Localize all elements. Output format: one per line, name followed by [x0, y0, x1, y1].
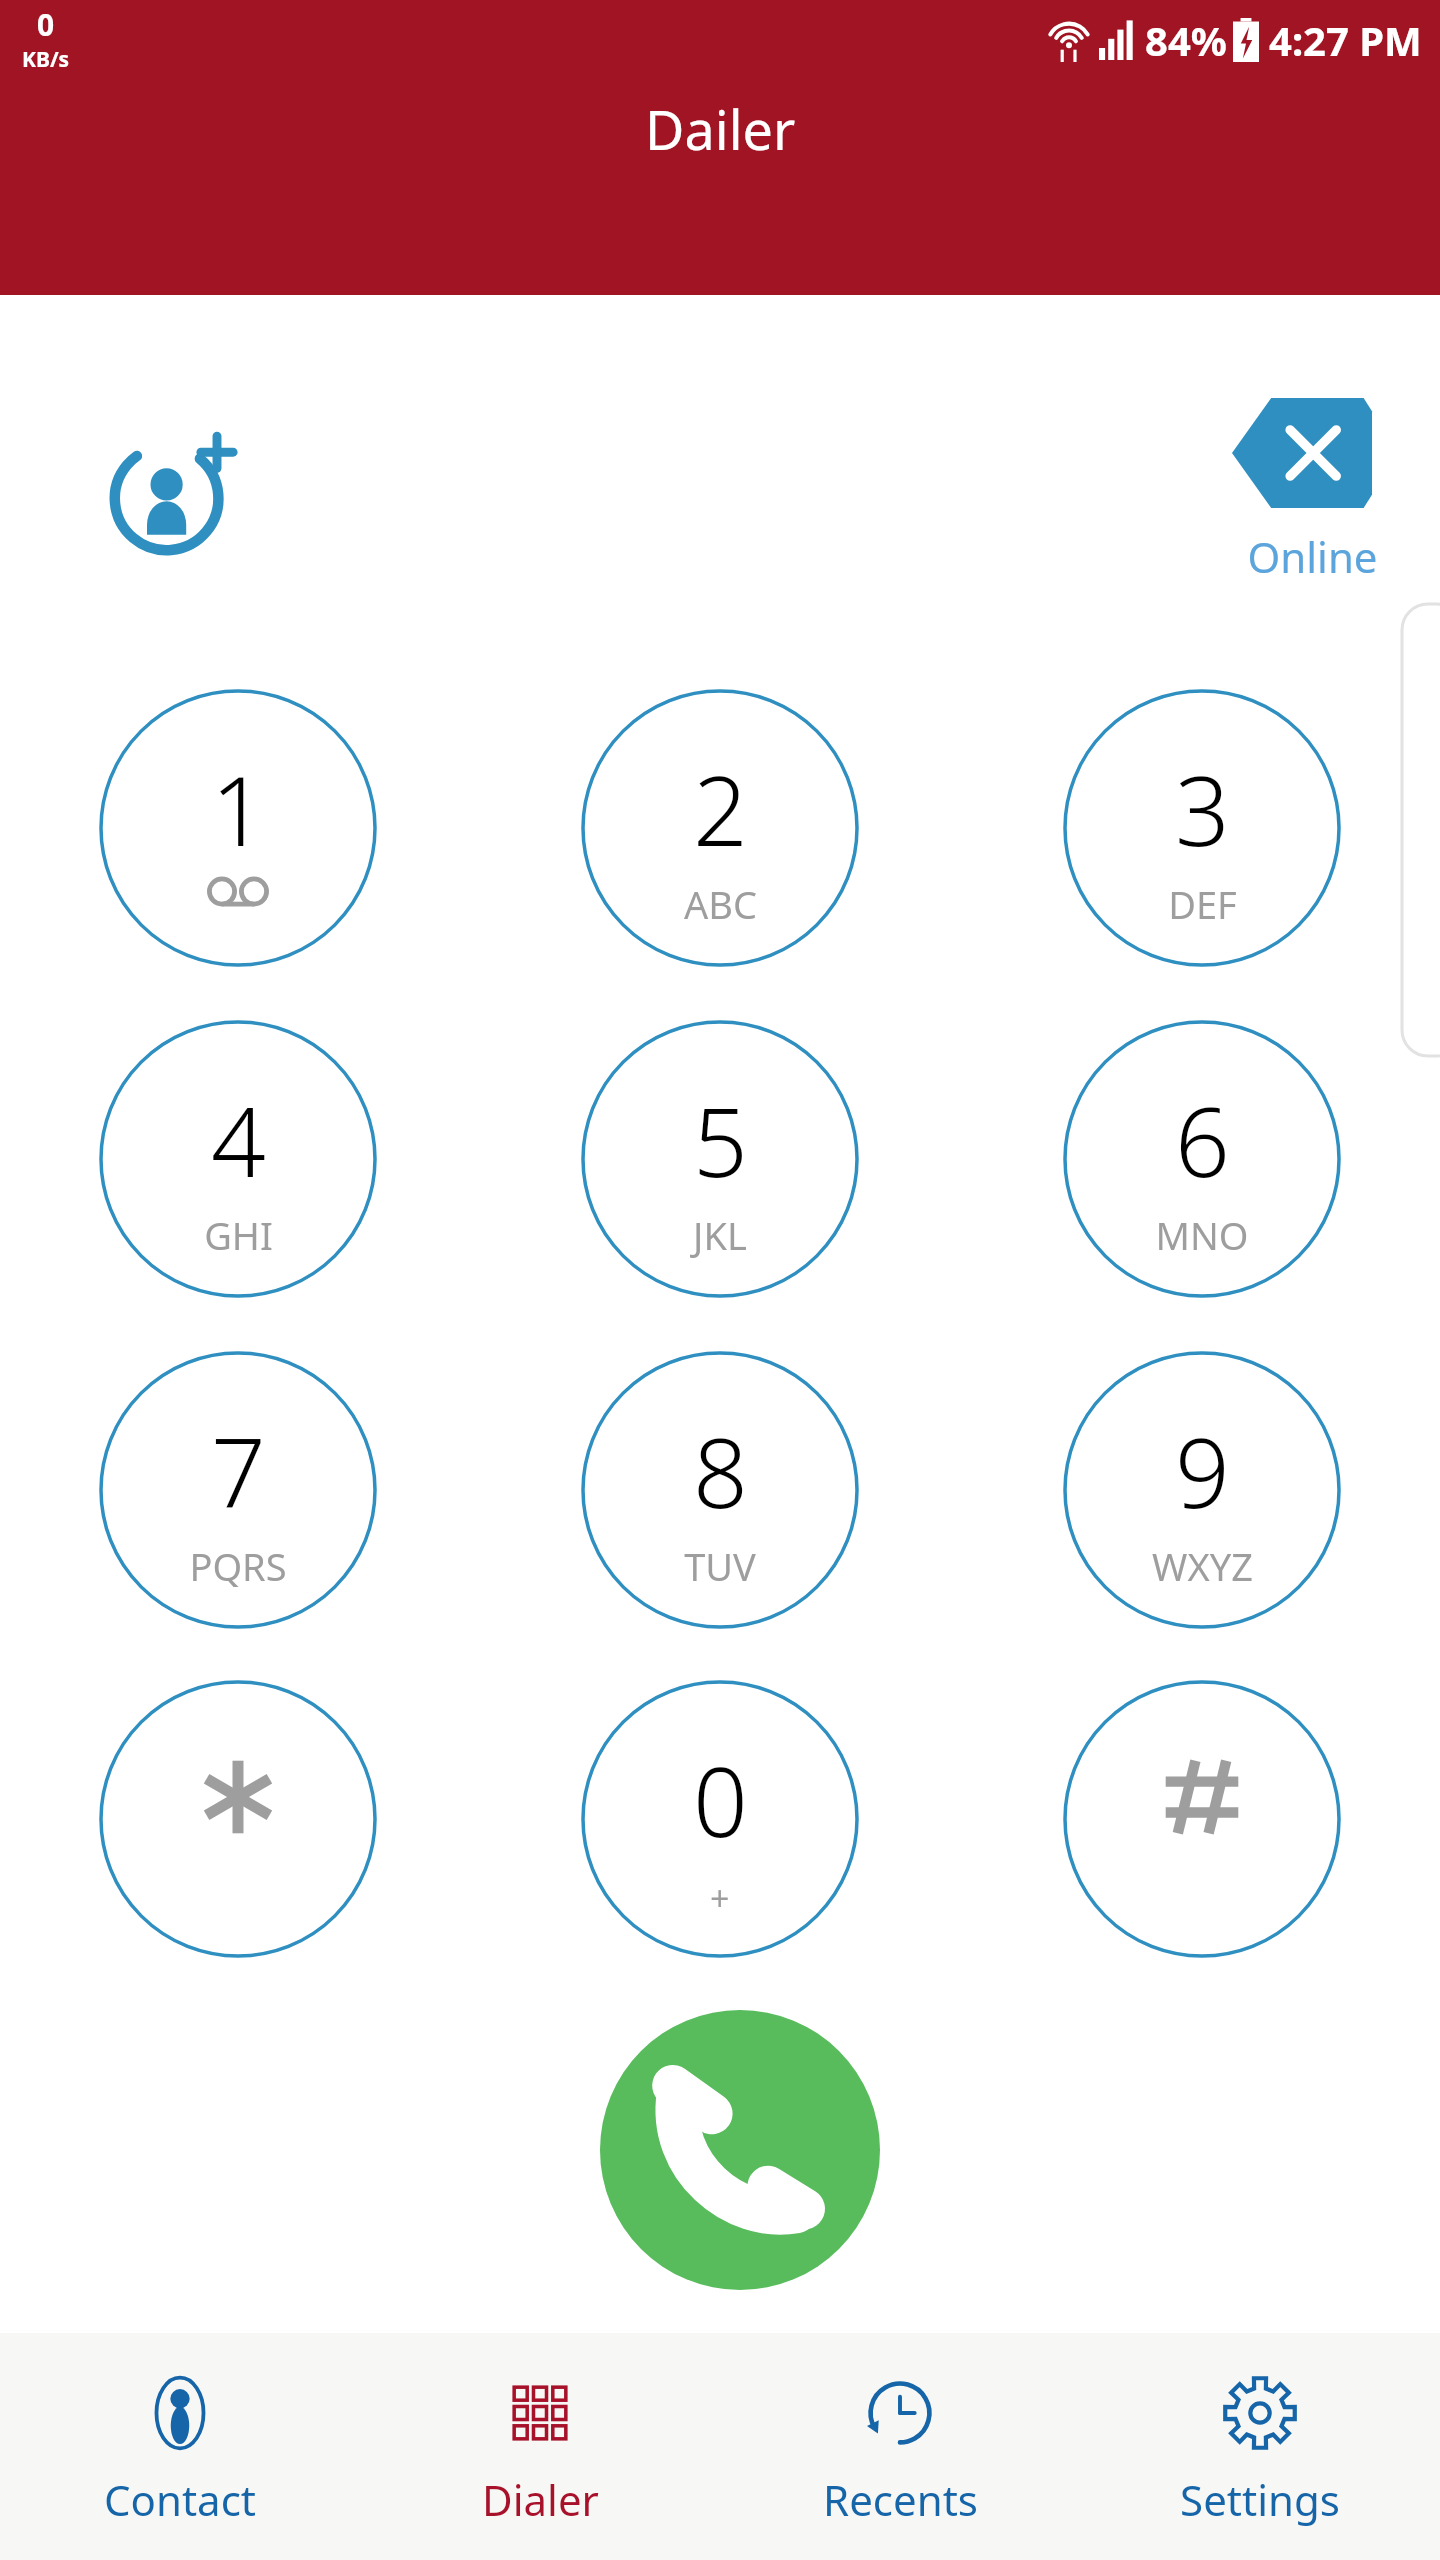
button[interactable]: Backspace [1232, 398, 1372, 508]
button[interactable]: 3 [1063, 689, 1341, 967]
button[interactable]: Add contact [105, 420, 245, 560]
staticText: 4:27 PM [1269, 13, 1422, 67]
staticText: 84% [1145, 13, 1227, 67]
staticText: 3 [1175, 743, 1230, 874]
staticText: Online [1247, 528, 1378, 585]
staticText: KB/s [22, 45, 70, 74]
staticText: ABC [684, 878, 757, 930]
button[interactable]: 9 [1063, 1351, 1341, 1629]
staticText: 5 [693, 1074, 748, 1205]
button[interactable]: 0 [581, 1680, 859, 1958]
button[interactable]: 4 [99, 1020, 377, 1298]
staticText: Settings [1180, 2471, 1340, 2528]
button[interactable]: 8 [581, 1351, 859, 1629]
staticText: 0 [693, 1734, 748, 1865]
button[interactable]: Recents [720, 2333, 1080, 2560]
button[interactable]: Dialer [360, 2333, 720, 2560]
staticText: 9 [1175, 1405, 1230, 1536]
staticText: JKL [693, 1209, 747, 1261]
staticText: 2 [693, 743, 748, 874]
button[interactable]: Contact [0, 2333, 360, 2560]
staticText: + [710, 1875, 730, 1921]
staticText: 6 [1175, 1074, 1230, 1205]
staticText: 0 [37, 4, 55, 45]
staticText: GHI [204, 1209, 273, 1261]
button[interactable] [99, 1680, 377, 1958]
staticText: 7 [211, 1405, 266, 1536]
staticText: Contact [104, 2471, 256, 2528]
staticText: WXYZ [1152, 1540, 1253, 1592]
button[interactable] [1063, 1680, 1341, 1958]
staticText: DEF [1168, 878, 1237, 930]
button[interactable]: 6 [1063, 1020, 1341, 1298]
button[interactable]: 5 [581, 1020, 859, 1298]
staticText: PQRS [189, 1540, 287, 1592]
staticText: 4 [211, 1074, 266, 1205]
staticText: 8 [693, 1405, 748, 1536]
button[interactable]: 7 [99, 1351, 377, 1629]
staticText: Recents [823, 2471, 978, 2528]
staticText: TUV [684, 1540, 756, 1592]
button[interactable]: 1 [99, 689, 377, 967]
staticText: Dialer [482, 2471, 599, 2528]
staticText: 1 [211, 743, 266, 874]
button[interactable]: Call [600, 2010, 880, 2290]
button[interactable]: 2 [581, 689, 859, 967]
staticText: MNO [1155, 1209, 1249, 1261]
button[interactable]: Settings [1080, 2333, 1440, 2560]
button[interactable]: Online [1185, 528, 1440, 585]
staticText: Dailer [645, 92, 796, 166]
